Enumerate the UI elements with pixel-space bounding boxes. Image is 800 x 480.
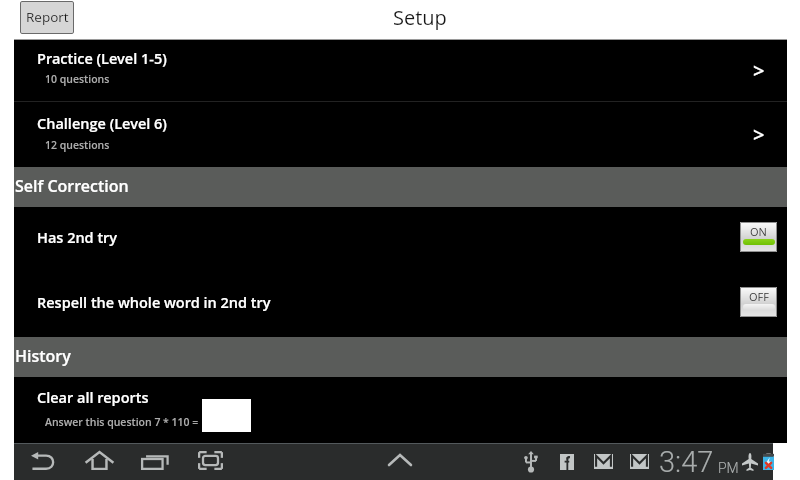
staticText: OFF — [749, 289, 769, 304]
staticText: 10 questions — [45, 72, 110, 86]
staticText: Answer this question 7 * 110 = — [45, 415, 199, 429]
staticText: 3:47 — [659, 445, 714, 479]
staticText: PM — [718, 460, 739, 476]
staticText: Has 2nd try — [37, 228, 118, 248]
staticText: ON — [750, 224, 767, 239]
button[interactable]: Report — [20, 1, 74, 34]
staticText: > — [753, 121, 765, 148]
button[interactable]: Has 2nd try — [14, 207, 787, 272]
button[interactable]: Practice (Level 1-5) — [14, 40, 787, 101]
button[interactable]: Challenge (Level 6) — [14, 102, 787, 167]
button[interactable]: Recents — [128, 443, 182, 480]
button[interactable]: On — [740, 222, 777, 252]
button[interactable]: Expand status bar — [375, 443, 425, 480]
button[interactable]: Home — [72, 443, 127, 480]
staticText: Setup — [393, 4, 447, 31]
staticText: > — [753, 57, 765, 84]
staticText: Challenge (Level 6) — [37, 114, 167, 134]
staticText: Practice (Level 1-5) — [37, 49, 167, 69]
staticText: Clear all reports — [37, 388, 149, 408]
staticText: Report — [26, 8, 69, 26]
button[interactable]: Screenshot — [185, 443, 236, 480]
button[interactable]: Back — [18, 443, 68, 480]
staticText: Respell the whole word in 2nd try — [37, 293, 271, 313]
button[interactable]: Respell the whole word in 2nd try — [14, 272, 787, 337]
button[interactable]: Clear all reports — [14, 377, 787, 443]
staticText: History — [15, 345, 71, 367]
staticText: 12 questions — [45, 138, 110, 152]
staticText: Self Correction — [15, 175, 129, 197]
button[interactable]: Off — [740, 287, 777, 317]
